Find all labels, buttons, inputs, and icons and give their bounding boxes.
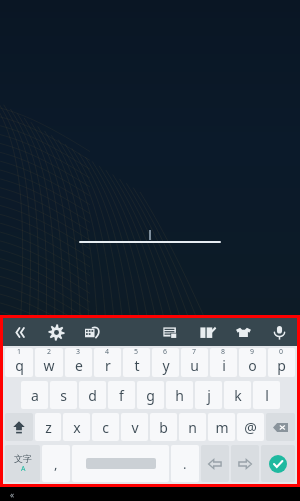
button[interactable]: Move cursor left bbox=[201, 445, 229, 482]
button[interactable]: g bbox=[137, 381, 164, 409]
button[interactable]: Backspace bbox=[266, 413, 295, 441]
staticText: @ bbox=[244, 418, 257, 437]
staticText: d bbox=[88, 386, 97, 405]
staticText: s bbox=[60, 386, 67, 405]
staticText: 4 bbox=[105, 348, 110, 357]
button[interactable]: d bbox=[79, 381, 106, 409]
button[interactable]: Handwriting bbox=[74, 318, 110, 346]
button[interactable]: Input language bbox=[5, 445, 40, 482]
staticText: 5 bbox=[134, 348, 139, 357]
staticText: 9 bbox=[250, 348, 255, 357]
staticText: A bbox=[21, 464, 26, 474]
staticText: 文字 bbox=[14, 453, 32, 464]
staticText: 0 bbox=[279, 348, 284, 357]
button[interactable]: 0 bbox=[268, 348, 295, 377]
button[interactable]: j bbox=[195, 381, 222, 409]
button[interactable]: 2 bbox=[35, 348, 63, 377]
button[interactable]: f bbox=[108, 381, 135, 409]
button[interactable]: h bbox=[166, 381, 193, 409]
button[interactable]: 4 bbox=[94, 348, 121, 377]
staticText: x bbox=[73, 418, 81, 437]
button[interactable]: 8 bbox=[210, 348, 237, 377]
button[interactable]: l bbox=[253, 381, 280, 409]
button[interactable]: 5 bbox=[123, 348, 150, 377]
button[interactable]: n bbox=[179, 413, 206, 441]
button[interactable]: Themes bbox=[225, 318, 261, 346]
button[interactable]: 6 bbox=[152, 348, 179, 377]
button[interactable]: m bbox=[208, 413, 235, 441]
staticText: j bbox=[207, 386, 211, 405]
staticText: o bbox=[248, 356, 257, 375]
staticText: m bbox=[215, 418, 229, 437]
button[interactable]: Back bbox=[3, 318, 38, 346]
staticText: y bbox=[162, 356, 170, 375]
button[interactable]: Space bbox=[72, 445, 169, 482]
staticText: a bbox=[31, 386, 39, 405]
staticText: g bbox=[146, 386, 155, 405]
button[interactable]: Confirm bbox=[261, 445, 295, 482]
staticText: 7 bbox=[192, 348, 197, 357]
button[interactable]: 7 bbox=[181, 348, 208, 377]
button[interactable] bbox=[80, 230, 220, 244]
button[interactable]: c bbox=[92, 413, 119, 441]
button[interactable]: Comma bbox=[42, 445, 70, 482]
staticText: 8 bbox=[221, 348, 226, 357]
staticText: p bbox=[277, 356, 286, 375]
staticText: w bbox=[43, 356, 55, 375]
staticText: c bbox=[102, 418, 109, 437]
button[interactable]: Notes bbox=[189, 318, 225, 346]
staticText: 1 bbox=[17, 348, 22, 357]
staticText: t bbox=[134, 356, 140, 375]
staticText: i bbox=[222, 356, 226, 375]
button[interactable]: z bbox=[35, 413, 61, 441]
button[interactable]: Period bbox=[171, 445, 199, 482]
button[interactable]: a bbox=[21, 381, 48, 409]
button[interactable]: Clipboard bbox=[153, 318, 189, 346]
staticText: q bbox=[15, 356, 24, 375]
staticText: l bbox=[265, 386, 269, 405]
button[interactable]: 3 bbox=[65, 348, 92, 377]
button[interactable]: b bbox=[150, 413, 177, 441]
staticText: z bbox=[45, 418, 52, 437]
staticText: , bbox=[54, 455, 58, 473]
button[interactable]: Move cursor right bbox=[231, 445, 259, 482]
button[interactable]: 1 bbox=[5, 348, 33, 377]
button[interactable]: x bbox=[63, 413, 90, 441]
button[interactable]: Shift bbox=[5, 413, 33, 441]
staticText: 2 bbox=[47, 348, 52, 357]
staticText: n bbox=[188, 418, 197, 437]
staticText: k bbox=[234, 386, 242, 405]
button[interactable]: s bbox=[50, 381, 77, 409]
staticText: u bbox=[190, 356, 199, 375]
button[interactable]: Settings bbox=[38, 318, 74, 346]
button[interactable]: @ bbox=[237, 413, 264, 441]
staticText: b bbox=[159, 418, 168, 437]
button[interactable]: Microphone bbox=[261, 318, 297, 346]
staticText: r bbox=[105, 356, 111, 375]
staticText: f bbox=[119, 386, 124, 405]
staticText: v bbox=[131, 418, 139, 437]
button[interactable]: 9 bbox=[239, 348, 266, 377]
staticText: h bbox=[175, 386, 184, 405]
staticText: e bbox=[75, 356, 83, 375]
staticText: 3 bbox=[76, 348, 81, 357]
staticText: « bbox=[10, 489, 15, 500]
button[interactable]: k bbox=[224, 381, 251, 409]
button[interactable]: v bbox=[121, 413, 148, 441]
staticText: 6 bbox=[163, 348, 168, 357]
staticText: . bbox=[183, 455, 187, 473]
